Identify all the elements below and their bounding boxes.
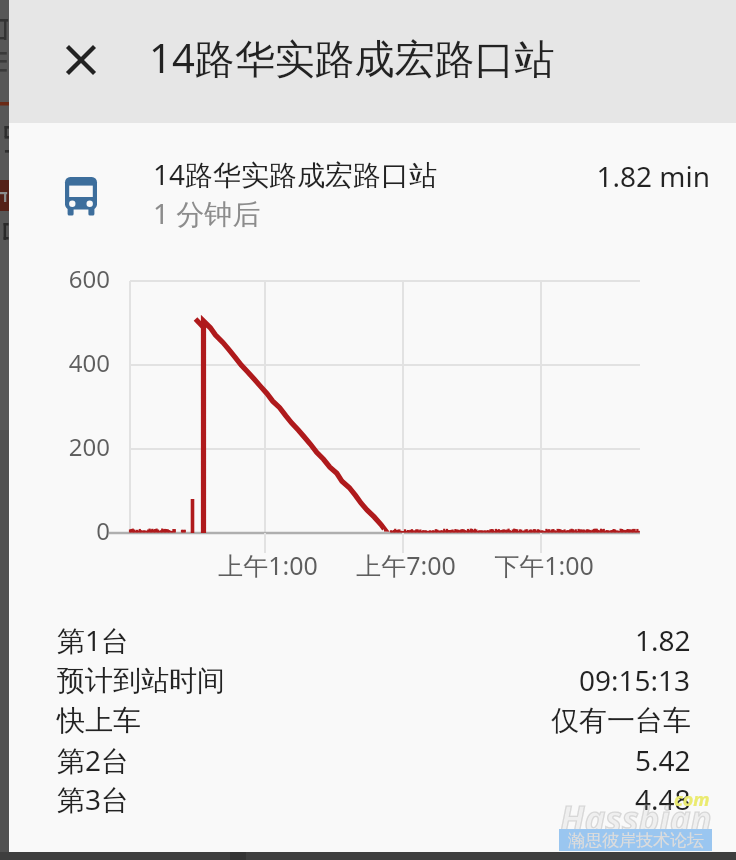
staticText: com bbox=[674, 787, 710, 812]
button[interactable]: Close bbox=[53, 32, 109, 88]
button[interactable]: 预计到站时间 bbox=[9, 660, 736, 700]
staticText: 上午7:00 bbox=[356, 548, 456, 582]
staticText: 14路华实路成宏路口站 bbox=[153, 155, 438, 193]
button[interactable]: 第2台 bbox=[9, 740, 736, 780]
staticText: 上午1:00 bbox=[218, 548, 318, 582]
button[interactable]: 第3台 bbox=[9, 779, 736, 819]
staticText: Hassbian bbox=[560, 795, 712, 843]
staticText: 0 bbox=[96, 514, 110, 547]
staticText: Hassbian bbox=[560, 795, 712, 843]
staticText: 1.82 min bbox=[596, 157, 710, 195]
staticText: 第2台 bbox=[57, 741, 130, 779]
staticText: 09:15:13 bbox=[579, 661, 691, 699]
staticText: 仅有一台车 bbox=[551, 703, 691, 738]
staticText: 预计到站时间 bbox=[57, 663, 225, 698]
button[interactable] bbox=[9, 140, 736, 240]
button[interactable]: 快上车 bbox=[9, 700, 736, 740]
staticText: 4.48 bbox=[635, 780, 691, 818]
staticText: 第1台 bbox=[57, 621, 130, 659]
staticText: 14路华实路成宏路口站 bbox=[149, 30, 555, 85]
staticText: 200 bbox=[68, 430, 110, 463]
staticText: 瀚思彼岸技术论坛 bbox=[568, 830, 704, 851]
staticText: 1 分钟后 bbox=[153, 194, 261, 232]
staticText: 5.42 bbox=[635, 741, 691, 779]
button[interactable]: 第1台 bbox=[9, 620, 736, 660]
staticText: 下午1:00 bbox=[494, 548, 594, 582]
staticText: 400 bbox=[68, 346, 110, 379]
button[interactable] bbox=[9, 0, 736, 123]
staticText: 600 bbox=[68, 262, 110, 295]
staticText: 1.82 bbox=[635, 621, 691, 659]
staticText: 快上车 bbox=[57, 703, 141, 738]
staticText: 第3台 bbox=[57, 780, 130, 818]
